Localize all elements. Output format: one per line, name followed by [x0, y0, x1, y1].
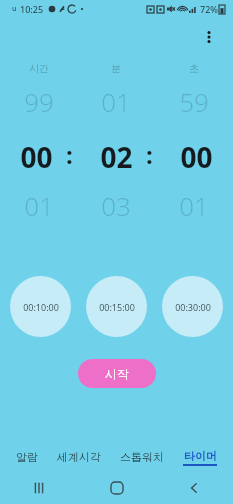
staticText: 스톱워치 [120, 450, 164, 464]
staticText: 세계시각 [57, 450, 101, 464]
staticText: 00:10:00 [23, 301, 59, 313]
button[interactable]: 00 [0, 138, 233, 176]
button[interactable]: Home [99, 472, 135, 504]
staticText: u [12, 4, 17, 14]
button[interactable]: 타이머 [181, 447, 219, 468]
staticText: 03 [101, 188, 131, 223]
staticText: 초 [189, 62, 199, 75]
button[interactable]: 00:30:00 [162, 276, 223, 337]
button[interactable]: 스톱워치 [118, 448, 166, 466]
staticText: 10:25 [20, 3, 44, 15]
staticText: 59 [179, 84, 209, 119]
staticText: 00 [180, 138, 213, 176]
staticText: 타이머 [184, 449, 217, 463]
staticText: 00:30:00 [175, 301, 211, 313]
staticText: 01 [101, 84, 131, 119]
staticText: 01 [24, 188, 54, 223]
staticText: 00 [20, 138, 53, 176]
button[interactable]: More options [193, 21, 225, 53]
button[interactable]: 00:10:00 [10, 276, 71, 337]
staticText: : [146, 138, 153, 171]
staticText: : [66, 138, 73, 171]
staticText: 알람 [16, 450, 38, 464]
staticText: 99 [24, 84, 54, 119]
staticText: 00:15:00 [99, 301, 135, 313]
staticText: 시작 [105, 366, 129, 381]
button[interactable]: 알람 [14, 448, 40, 466]
button[interactable]: Recents [21, 472, 57, 504]
staticText: 시간 [29, 62, 49, 75]
staticText: 72% [200, 3, 218, 15]
button[interactable]: Back [176, 472, 212, 504]
button[interactable]: 시작 [78, 359, 156, 388]
button[interactable]: 00:15:00 [86, 276, 147, 337]
staticText: 01 [179, 188, 209, 223]
staticText: 02 [100, 138, 133, 176]
button[interactable]: 세계시각 [55, 448, 103, 466]
staticText: 분 [111, 62, 121, 75]
